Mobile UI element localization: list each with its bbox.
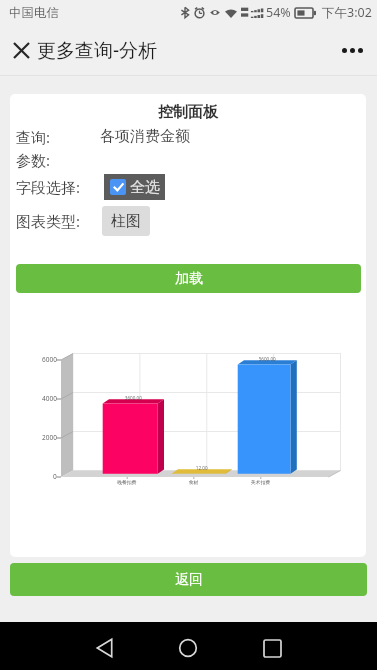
button[interactable]: Back (82, 626, 126, 670)
staticText: 54% (266, 4, 291, 21)
button[interactable]: Recents (250, 626, 294, 670)
staticText: 柱图 (111, 212, 141, 231)
button[interactable]: Home (166, 626, 210, 670)
staticText: 中国电信 (9, 5, 59, 21)
button[interactable]: 柱图 (111, 206, 141, 236)
button[interactable]: Close (4, 33, 38, 67)
staticText: 全选 (130, 178, 160, 197)
staticText: 查询: (16, 127, 51, 147)
staticText: 控制面板 (158, 103, 218, 122)
staticText: 参数: (16, 150, 51, 170)
staticText: 返回 (175, 571, 203, 589)
button[interactable]: 返回 (10, 563, 367, 596)
staticText: 图表类型: (16, 211, 81, 231)
staticText: 字段选择: (16, 177, 81, 197)
button[interactable]: 全选 (110, 174, 160, 200)
button[interactable]: More options (335, 33, 369, 67)
staticText: 各项消费金额 (100, 127, 190, 146)
staticText: 下午3:02 (322, 4, 372, 21)
staticText: 更多查询-分析 (37, 37, 158, 63)
staticText: 加载 (175, 270, 203, 288)
button[interactable]: 加载 (16, 264, 361, 293)
